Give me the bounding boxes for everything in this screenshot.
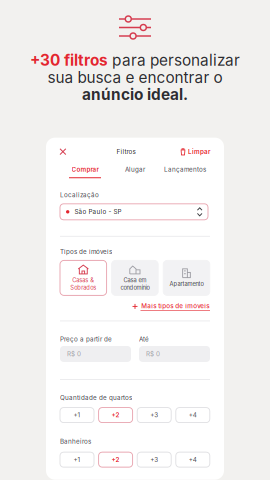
staticText: +4 xyxy=(189,411,197,419)
button[interactable]: Fechar xyxy=(60,146,76,158)
button[interactable]: Comprar xyxy=(60,166,110,178)
staticText: Casa em xyxy=(123,277,146,284)
button[interactable]: Casa em xyxy=(112,260,158,295)
button[interactable]: +2 xyxy=(99,408,133,423)
staticText: Quantidade de quartos xyxy=(60,394,132,402)
staticText: Comprar xyxy=(71,166,98,173)
staticText: Limpar xyxy=(188,148,210,155)
staticText: Lançamentos xyxy=(164,166,206,173)
button[interactable]: Alugar xyxy=(110,166,160,178)
staticText: Mais tipos de imóveis xyxy=(141,302,209,310)
button[interactable]: +2 xyxy=(99,452,133,467)
button[interactable]: Apartamento xyxy=(163,260,210,295)
button[interactable]: +3 xyxy=(137,408,171,423)
staticText: +1 xyxy=(73,456,80,463)
button[interactable]: Limpar xyxy=(176,146,210,158)
staticText: Até xyxy=(139,335,149,343)
staticText: Filtros xyxy=(116,148,135,155)
staticText: para personalizar xyxy=(108,51,240,70)
button[interactable]: +4 xyxy=(176,408,210,423)
staticText: Tipos de imóveis xyxy=(60,248,112,255)
staticText: Alugar xyxy=(125,166,145,173)
button[interactable]: Casas & xyxy=(60,260,107,295)
button[interactable]: +3 xyxy=(137,452,171,467)
button[interactable]: Mais tipos de imóveis xyxy=(60,301,210,311)
staticText: R$ 0 xyxy=(67,350,81,358)
staticText: Casas & xyxy=(72,277,94,284)
button[interactable]: +4 xyxy=(176,452,210,467)
staticText: +30 filtros xyxy=(30,51,108,70)
staticText: Localização xyxy=(60,191,99,199)
button[interactable]: +1 xyxy=(60,452,94,467)
staticText: +3 xyxy=(150,456,158,463)
staticText: +3 xyxy=(150,411,158,419)
staticText: Banheiros xyxy=(60,438,91,445)
staticText: sua busca e encontrar o xyxy=(47,68,222,87)
staticText: +4 xyxy=(189,456,197,463)
staticText: Preço a partir de xyxy=(60,335,112,343)
button[interactable]: Lançamentos xyxy=(160,166,210,178)
staticText: Apartamento xyxy=(169,280,203,287)
staticText: +2 xyxy=(112,456,120,463)
staticText: +1 xyxy=(73,411,80,419)
staticText: anúncio ideal. xyxy=(82,85,188,104)
staticText: condomínio xyxy=(120,284,149,291)
staticText: R$ 0 xyxy=(146,350,160,358)
staticText: +2 xyxy=(112,411,120,419)
button[interactable]: São Paulo - SP xyxy=(60,204,208,220)
button[interactable]: +1 xyxy=(60,408,94,423)
staticText: São Paulo - SP xyxy=(74,208,121,216)
staticText: Sobrados xyxy=(70,284,96,291)
